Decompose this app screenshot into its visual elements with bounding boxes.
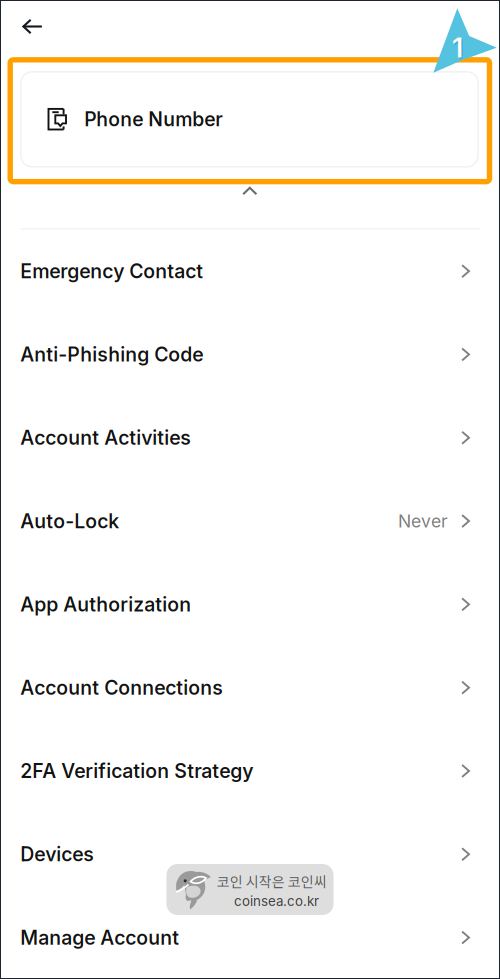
button[interactable]: Manage Account [0, 896, 500, 979]
button[interactable]: App Authorization [0, 563, 500, 646]
staticText: Emergency Contact [20, 259, 203, 283]
button[interactable]: Auto-Lock [0, 479, 500, 563]
staticText: Auto-Lock [20, 509, 119, 533]
button[interactable]: Emergency Contact [0, 229, 500, 313]
staticText: Never [398, 510, 448, 532]
staticText: 1 [452, 32, 463, 64]
button[interactable]: Anti-Phishing Code [0, 313, 500, 396]
staticText: App Authorization [20, 593, 191, 616]
button[interactable]: Account Connections [0, 646, 500, 729]
button[interactable]: Devices [0, 813, 500, 896]
staticText: Anti-Phishing Code [20, 343, 203, 366]
button[interactable]: Back [6, 3, 60, 49]
button[interactable]: Account Activities [0, 396, 500, 479]
staticText: coinsea.co.kr [234, 893, 319, 909]
button[interactable]: 2FA Verification Strategy [0, 729, 500, 813]
staticText: Manage Account [20, 926, 179, 949]
button[interactable]: Collapse [222, 178, 278, 204]
staticText: 2FA Verification Strategy [20, 759, 253, 783]
staticText: Account Connections [20, 676, 223, 699]
staticText: Devices [20, 842, 94, 866]
button[interactable]: Phone Number [21, 72, 478, 167]
staticText: Phone Number [84, 108, 223, 131]
staticText: Account Activities [20, 426, 191, 450]
staticText: 1 [453, 33, 464, 65]
staticText: 코인 시작은 코인씨 [217, 871, 327, 891]
